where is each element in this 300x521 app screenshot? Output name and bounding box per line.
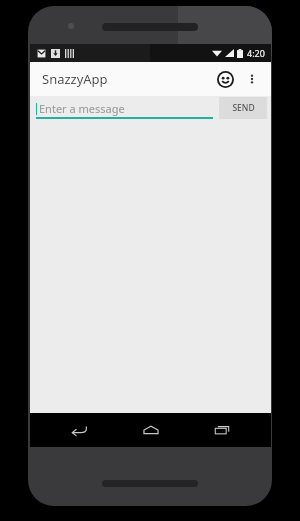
- button[interactable]: Back: [57, 413, 101, 447]
- button[interactable]: SEND: [219, 97, 267, 119]
- staticText: SEND: [232, 102, 255, 114]
- staticText: Enter a message: [39, 101, 125, 116]
- button[interactable]: Account: [211, 65, 239, 93]
- button[interactable]: Enter a message: [36, 97, 213, 119]
- button[interactable]: Home: [129, 413, 173, 447]
- staticText: 4:20: [247, 47, 265, 59]
- button[interactable]: More options: [241, 68, 263, 90]
- staticText: SnazzyApp: [42, 70, 108, 88]
- button[interactable]: Recents: [200, 413, 244, 447]
